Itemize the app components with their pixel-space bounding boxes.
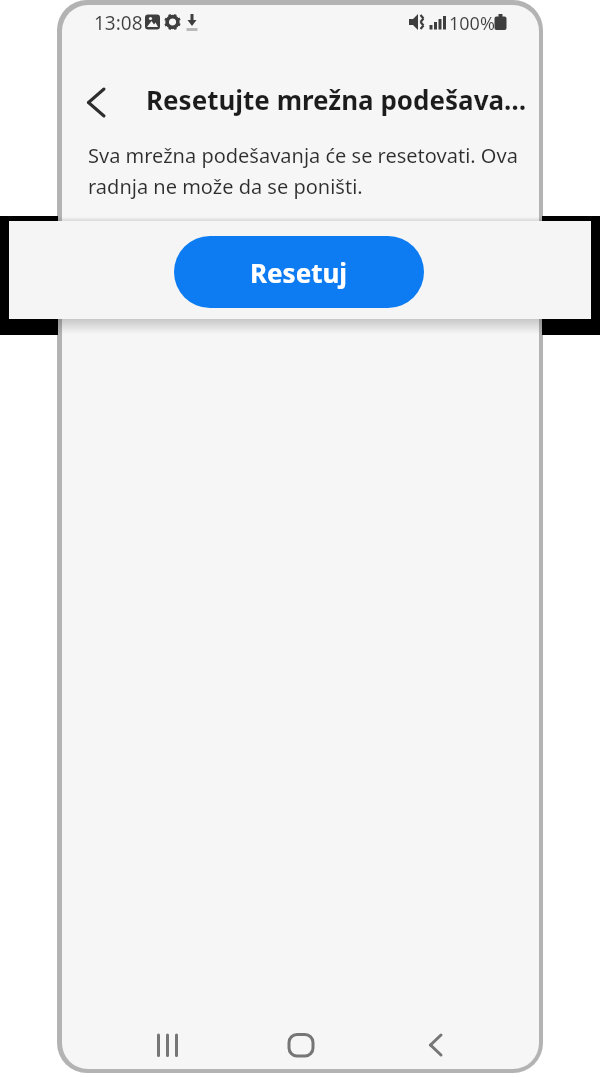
button[interactable] [145, 1025, 190, 1065]
staticText: 100% [449, 11, 495, 36]
staticText: 13:08 [94, 10, 143, 36]
button[interactable] [418, 1025, 463, 1065]
button[interactable] [78, 85, 118, 121]
button[interactable]: Resetuj [174, 236, 424, 308]
staticText: Sva mrežna podešavanja će se resetovati.… [88, 142, 518, 200]
staticText: Resetujte mrežna podešava… [146, 82, 527, 117]
button[interactable] [280, 1025, 325, 1065]
staticText: Resetuj [250, 255, 348, 290]
